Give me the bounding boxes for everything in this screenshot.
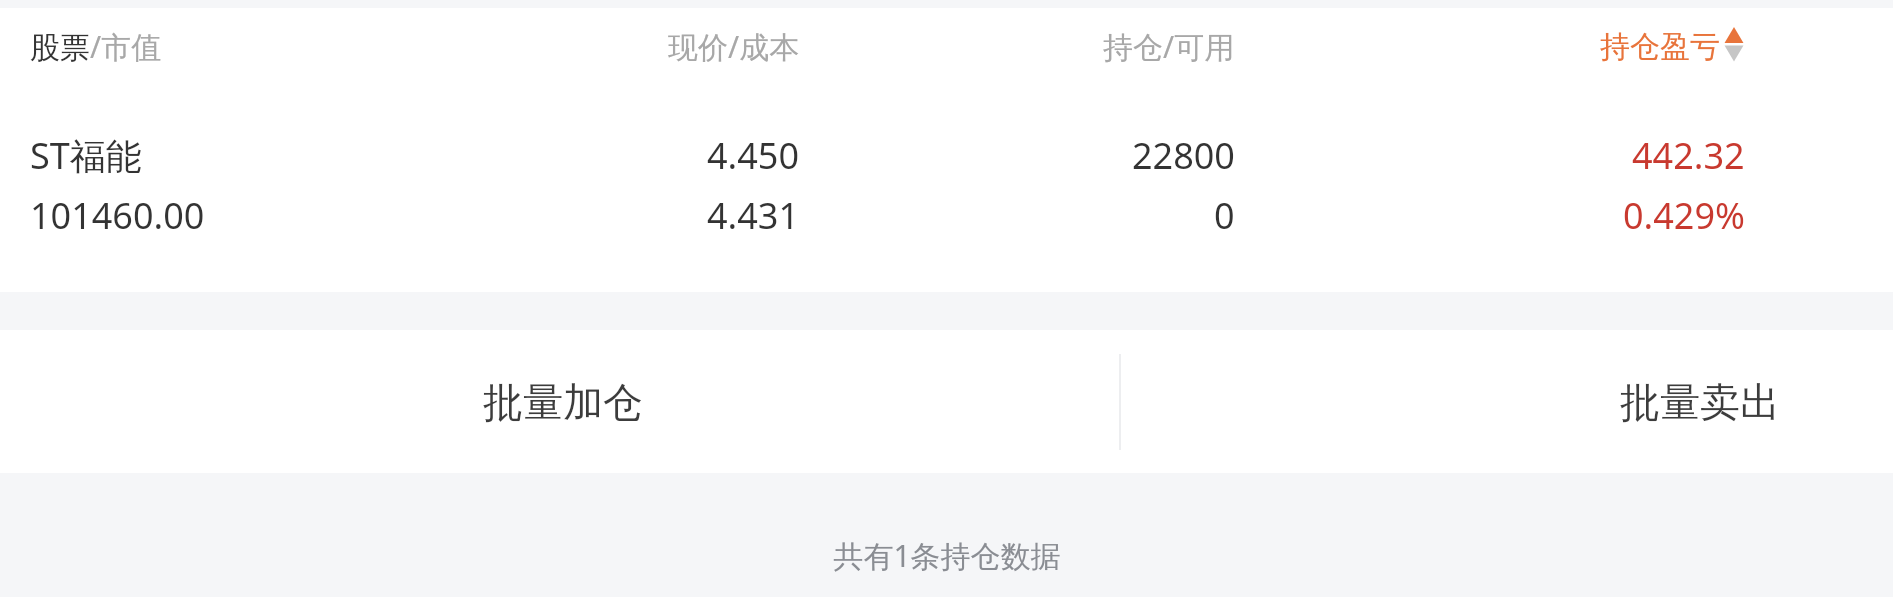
staticText: 持仓盈亏: [1600, 28, 1720, 66]
staticText: 4.431: [707, 191, 800, 240]
staticText: 0.429%: [1623, 191, 1745, 240]
staticText: 批量卖出: [1620, 377, 1780, 427]
staticText: 442.32: [1632, 131, 1745, 180]
button[interactable]: 持仓/可用: [1103, 26, 1235, 67]
staticText: ST福能: [30, 131, 142, 180]
staticText: 共有1条持仓数据: [833, 535, 1061, 576]
button[interactable]: 现价/成本: [668, 26, 800, 67]
staticText: 101460.00: [30, 191, 205, 240]
button[interactable]: 批量加仓: [0, 330, 1119, 473]
staticText: 0: [1214, 191, 1235, 240]
button[interactable]: 批量卖出: [1119, 330, 1893, 473]
button[interactable]: 持仓盈亏: [1600, 27, 1745, 67]
staticText: 批量加仓: [483, 377, 643, 427]
button[interactable]: ST福能: [0, 85, 1893, 292]
staticText: 22800: [1132, 131, 1235, 180]
button[interactable]: 股票/市值: [30, 26, 162, 67]
staticText: 4.450: [707, 131, 800, 180]
